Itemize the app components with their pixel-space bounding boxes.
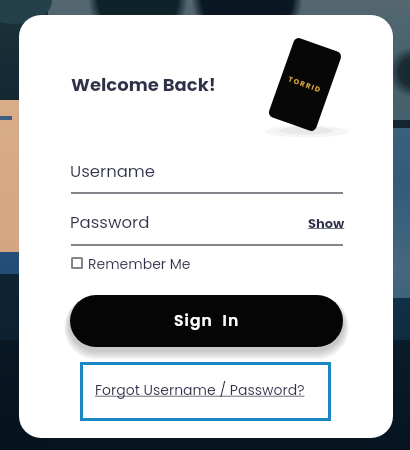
staticText: TORRID [287, 74, 323, 96]
staticText: Password [70, 211, 150, 234]
staticText: Forgot Username / Password? [95, 380, 305, 400]
staticText: Sign In [174, 310, 240, 332]
button[interactable]: Show [308, 214, 345, 232]
button[interactable]: Forgot Username / Password? [80, 362, 331, 421]
button[interactable]: Sign In [70, 295, 343, 347]
button[interactable]: Remember Me [70, 253, 195, 273]
staticText: Welcome Back! [71, 72, 216, 97]
staticText: Remember Me [88, 254, 191, 274]
staticText: Show [308, 214, 345, 232]
staticText: Username [70, 160, 156, 183]
